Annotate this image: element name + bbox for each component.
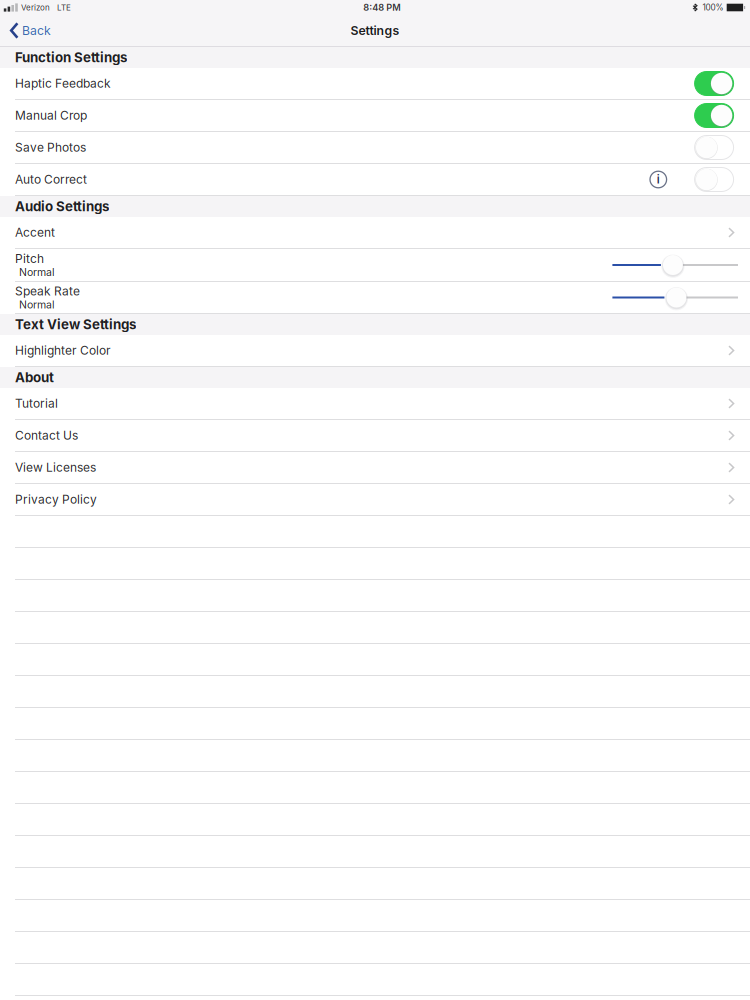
staticText: Privacy Policy: [15, 492, 97, 507]
staticText: Accent: [15, 225, 55, 240]
staticText: Contact Us: [15, 428, 78, 443]
staticText: Normal: [19, 298, 55, 311]
button[interactable]: Back: [0, 16, 61, 44]
staticText: Save Photos: [15, 140, 86, 155]
button[interactable]: More info about Auto Correct: [650, 171, 667, 188]
staticText: Haptic Feedback: [15, 76, 111, 91]
staticText: Audio Settings: [15, 198, 109, 214]
staticText: Manual Crop: [15, 108, 87, 123]
staticText: LTE: [57, 3, 71, 12]
staticText: Function Settings: [15, 49, 127, 65]
staticText: Settings: [350, 23, 399, 38]
staticText: Verizon: [21, 3, 50, 12]
button[interactable]: Tutorial: [0, 388, 750, 420]
button[interactable]: Auto Correct: [0, 164, 750, 196]
button[interactable]: Save Photos: [0, 132, 750, 164]
staticText: Auto Correct: [15, 172, 87, 187]
button[interactable]: Manual Crop: [0, 100, 750, 132]
button[interactable]: Contact Us: [0, 420, 750, 452]
staticText: Speak Rate: [15, 284, 80, 298]
staticText: Tutorial: [15, 396, 58, 411]
staticText: Back: [22, 23, 51, 38]
button[interactable]: Accent: [0, 217, 750, 249]
staticText: About: [15, 369, 54, 385]
staticText: Text View Settings: [15, 316, 136, 332]
staticText: Highlighter Color: [15, 343, 111, 358]
staticText: Normal: [19, 266, 55, 279]
button[interactable]: Haptic Feedback: [0, 68, 750, 100]
button[interactable]: Privacy Policy: [0, 484, 750, 516]
staticText: i: [657, 173, 660, 186]
staticText: Pitch: [15, 251, 44, 266]
staticText: 100%: [702, 2, 723, 12]
staticText: 8:48 PM: [363, 2, 400, 13]
button[interactable]: Highlighter Color: [0, 335, 750, 367]
button[interactable]: View Licenses: [0, 452, 750, 484]
staticText: View Licenses: [15, 460, 96, 475]
